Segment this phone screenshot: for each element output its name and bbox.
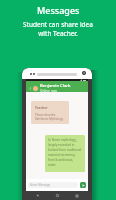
button[interactable]: Back — [28, 86, 33, 91]
staticText: Teacher — [35, 106, 48, 110]
staticText: Messages — [37, 4, 80, 16]
button[interactable]: Enter Message — [30, 182, 76, 188]
staticText: Online now — [40, 89, 58, 93]
button[interactable]: Teacher — [31, 101, 69, 124]
button[interactable]: In Norse mythology, largely recorded in … — [45, 135, 85, 172]
button[interactable]: Back — [34, 192, 41, 199]
staticText: Please describe Rainforest Mythology — [35, 113, 68, 121]
button[interactable]: Home — [54, 192, 61, 199]
staticText: Enter Message — [30, 183, 51, 187]
staticText: In Norse mythology, largely recorded in … — [48, 138, 82, 167]
button[interactable]: Send — [80, 182, 86, 188]
button[interactable]: Recents — [73, 192, 80, 199]
staticText: Student can share idea with Teacher. — [23, 20, 93, 38]
staticText: Benjamin Clark — [40, 83, 71, 89]
